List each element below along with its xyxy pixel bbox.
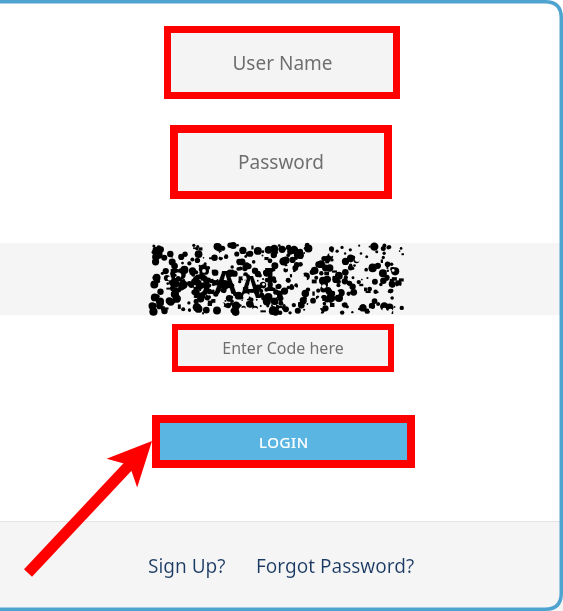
button[interactable]: Forgot Password? bbox=[252, 549, 419, 583]
staticText: A bbox=[240, 266, 261, 307]
staticText: LOGIN bbox=[259, 432, 309, 452]
button[interactable]: Sign Up? bbox=[144, 549, 230, 583]
staticText: Enter Code here bbox=[222, 337, 344, 359]
staticText: A bbox=[214, 259, 237, 304]
staticText: User Name bbox=[232, 50, 333, 76]
button[interactable]: Enter Code here bbox=[178, 330, 388, 366]
staticText: Sign Up? bbox=[148, 553, 226, 579]
button[interactable]: LOGIN bbox=[160, 423, 407, 460]
staticText: 9 bbox=[191, 262, 211, 308]
button[interactable]: User Name bbox=[171, 33, 393, 92]
button[interactable]: Password bbox=[178, 133, 384, 191]
staticText: Forgot Password? bbox=[256, 553, 415, 579]
staticText: I bbox=[264, 257, 277, 301]
staticText: Password bbox=[238, 149, 324, 175]
staticText: B bbox=[168, 259, 188, 300]
